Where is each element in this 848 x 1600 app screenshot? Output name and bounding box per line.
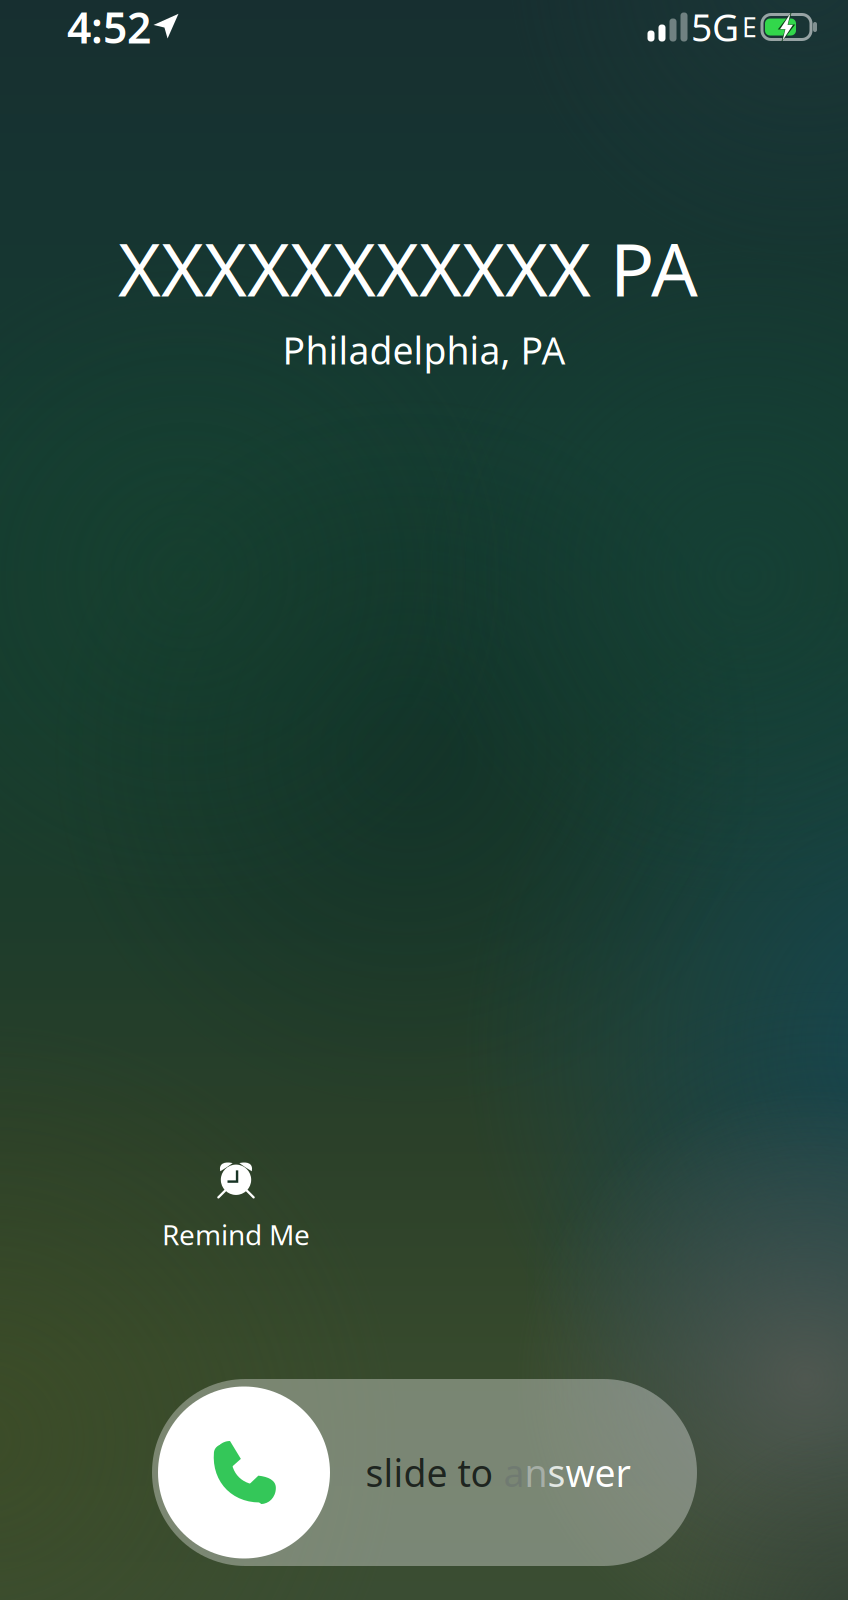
staticText: n (524, 1448, 547, 1497)
staticText: Remind Me (162, 1216, 310, 1253)
staticText: slide to (365, 1448, 503, 1497)
staticText: 4:52 (67, 0, 151, 55)
staticText: a (503, 1448, 524, 1497)
button[interactable]: Remind Me (136, 1149, 336, 1259)
staticText: E (742, 9, 757, 45)
staticText: wer (565, 1448, 630, 1497)
button[interactable]: slide to (152, 1379, 697, 1566)
staticText: s (547, 1448, 565, 1497)
staticText: 5G (691, 2, 739, 52)
staticText: XXXXXXXXXXX PA (118, 219, 698, 317)
staticText: Philadelphia, PA (282, 325, 565, 375)
